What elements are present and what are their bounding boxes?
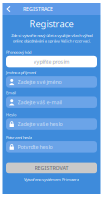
staticText: Heslo (6, 112, 16, 117)
staticText: Zadejte vaše heslo (17, 120, 62, 128)
staticText: Jméno a příjmení (6, 70, 36, 75)
staticText: Email (6, 90, 16, 95)
staticText: Registrace (29, 17, 73, 30)
button[interactable]: Zadejte váš e-mail (6, 96, 97, 108)
staticText: Potvrďte heslo (17, 143, 52, 150)
staticText: Zde si vytvořte nový účet a využijte vše… (11, 33, 92, 43)
staticText: Zadejte váš e-mail (17, 99, 61, 106)
button[interactable]: Zadejte vaše heslo (6, 118, 97, 130)
staticText: REGISTRACE (23, 5, 53, 13)
button[interactable]: vyplňte prosím (6, 56, 97, 67)
button[interactable]: Back (2, 3, 15, 15)
button[interactable]: Potvrďte heslo (6, 141, 97, 153)
staticText: Přenosový kód (6, 49, 31, 55)
staticText: REGISTROVAT (34, 164, 68, 171)
button[interactable]: Zadejte své jméno (6, 76, 97, 88)
staticText: Potvrzení hesla (6, 135, 32, 140)
staticText: Vytvořeno systémem Primaera (24, 177, 79, 182)
staticText: Zadejte své jméno (17, 78, 61, 85)
button[interactable]: REGISTROVAT (6, 163, 97, 173)
staticText: vyplňte prosím (33, 58, 69, 65)
